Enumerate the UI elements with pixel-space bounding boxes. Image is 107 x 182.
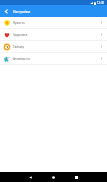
button[interactable]: Back bbox=[0, 5, 13, 17]
staticText: 12:30 bbox=[97, 1, 105, 5]
button[interactable]: Back bbox=[24, 172, 37, 182]
button[interactable]: Таймер bbox=[0, 41, 107, 53]
staticText: Настройки bbox=[13, 9, 31, 13]
button[interactable]: Home bbox=[47, 172, 60, 182]
button[interactable]: Активность bbox=[0, 53, 107, 65]
button[interactable]: Здоровье bbox=[0, 29, 107, 41]
staticText: Таймер bbox=[13, 45, 100, 49]
staticText: Яркость bbox=[13, 21, 100, 25]
button[interactable]: Recent apps bbox=[70, 172, 83, 182]
staticText: Активность bbox=[13, 57, 100, 61]
button[interactable]: Яркость bbox=[0, 17, 107, 29]
staticText: Здоровье bbox=[13, 33, 100, 37]
